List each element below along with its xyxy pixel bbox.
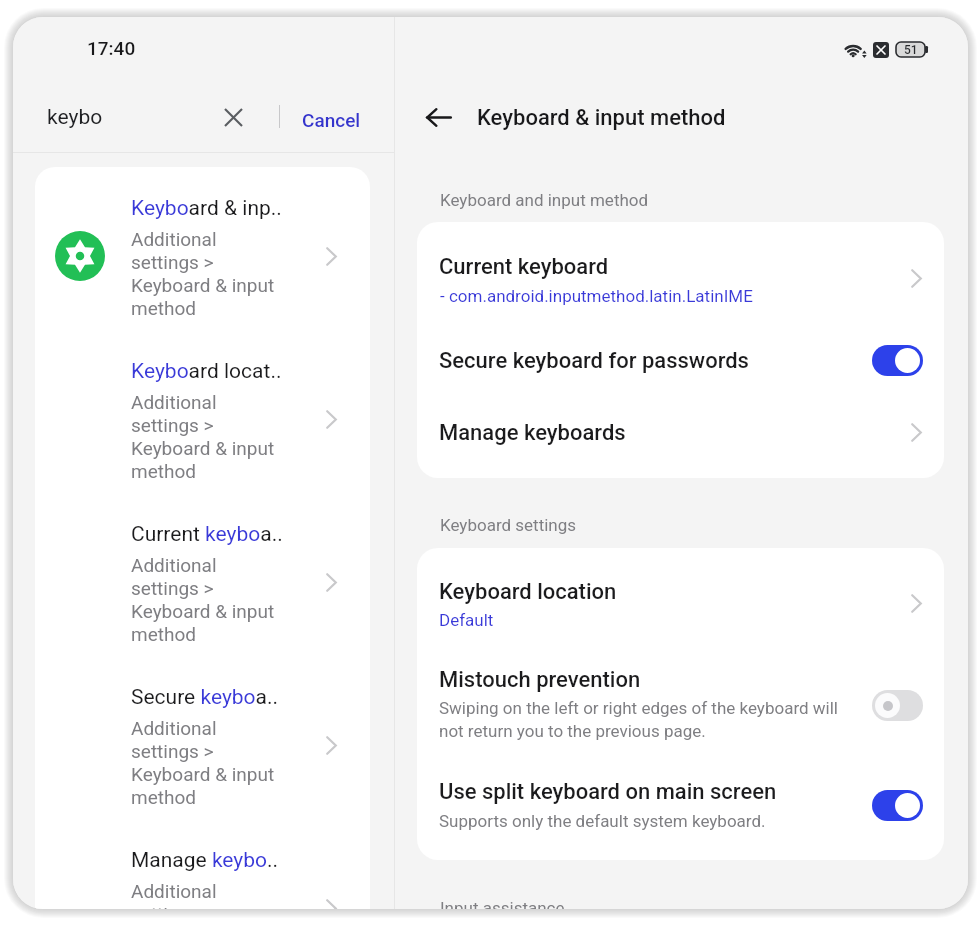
staticText: Manage keybo.. xyxy=(131,846,279,873)
staticText: Input assistance xyxy=(440,897,565,909)
staticText: 51 xyxy=(904,42,918,57)
button[interactable]: Current keyboa.. xyxy=(35,493,370,656)
staticText: Keyboard location xyxy=(439,577,617,605)
staticText: keybo xyxy=(47,103,103,130)
staticText: Secure keyboard for passwords xyxy=(439,346,749,374)
button[interactable]: Switch on xyxy=(872,345,923,376)
staticText: Additional settings > Keyboard & input m… xyxy=(131,228,281,320)
staticText: Keyboard locat.. xyxy=(131,357,282,384)
staticText: Current keyboa.. xyxy=(131,520,283,547)
staticText: Swiping on the left or right edges of th… xyxy=(439,696,849,742)
button[interactable]: Back xyxy=(417,95,461,139)
staticText: Keyboard & input method xyxy=(477,103,726,131)
button[interactable]: Keyboard locat.. xyxy=(35,330,370,493)
button[interactable]: Manage keybo.. xyxy=(35,819,370,909)
staticText: Additional settings > Keyboard & input m… xyxy=(131,717,281,809)
button[interactable]: Switch on xyxy=(872,790,923,821)
staticText: Additional settings > Keyboard & input m… xyxy=(131,554,281,646)
staticText: Keyboard & inp.. xyxy=(131,194,282,221)
staticText: Keyboard and input method xyxy=(440,189,649,211)
staticText: 17:40 xyxy=(87,36,136,60)
staticText: Mistouch prevention xyxy=(439,665,641,693)
staticText: - com.android.inputmethod.latin.LatinIME xyxy=(440,285,753,307)
button[interactable]: Cancel xyxy=(293,98,370,142)
staticText: Use split keyboard on main screen xyxy=(439,777,777,805)
staticText: Cancel xyxy=(302,108,361,132)
staticText: Secure keyboa.. xyxy=(131,683,279,710)
staticText: Manage keyboards xyxy=(439,418,626,446)
staticText: Supports only the default system keyboar… xyxy=(439,810,766,832)
staticText: Current keyboard xyxy=(439,252,609,280)
button[interactable]: Switch off xyxy=(872,690,923,721)
button[interactable]: Keyboard & inp.. xyxy=(35,167,370,330)
staticText: Additional settings > Keyboard & input m… xyxy=(131,391,281,483)
button[interactable]: Clear search xyxy=(214,98,252,136)
button[interactable]: Secure keyboa.. xyxy=(35,656,370,819)
staticText: Default xyxy=(439,609,494,631)
staticText: Keyboard settings xyxy=(440,514,577,536)
staticText: Additional settings > Keyboard & input m… xyxy=(131,880,281,909)
